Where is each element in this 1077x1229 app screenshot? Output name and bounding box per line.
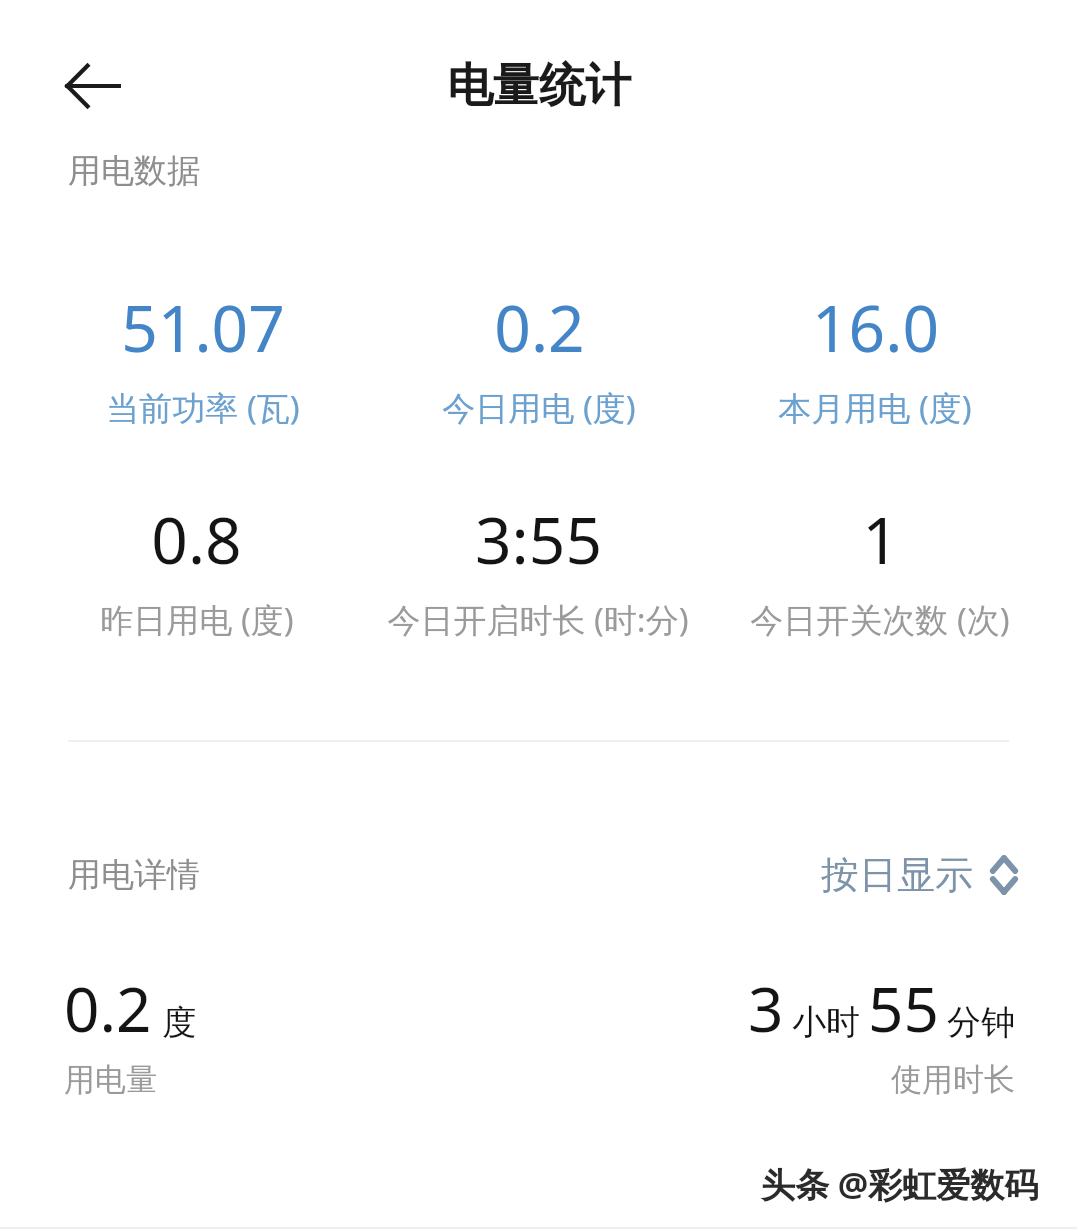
staticText: 16.0 (812, 284, 939, 371)
button[interactable]: 0.2 (371, 284, 707, 430)
staticText: 今日开关次数 (次) (750, 597, 1010, 642)
staticText: 3:55 (475, 496, 602, 583)
button[interactable]: 1 (709, 496, 1051, 642)
staticText: 当前功率 (瓦) (106, 385, 300, 430)
staticText: 0.8 (151, 496, 242, 583)
staticText: 用电数据 (68, 150, 200, 192)
staticText: 分钟 (947, 1001, 1015, 1044)
staticText: 3 (748, 966, 784, 1050)
button[interactable]: 按日显示 (821, 850, 1021, 900)
staticText: 本月用电 (度) (778, 385, 972, 430)
button[interactable]: 3:55 (367, 496, 709, 642)
staticText: 小时 (792, 1001, 860, 1044)
button[interactable]: Back (56, 50, 128, 122)
staticText: 55 (868, 966, 939, 1050)
button[interactable]: 51.07 (34, 284, 371, 430)
staticText: 昨日用电 (度) (100, 597, 294, 642)
staticText: 度 (162, 1001, 196, 1044)
other: Change period (987, 850, 1021, 900)
staticText: 按日显示 (821, 851, 973, 899)
button[interactable]: 0.2 (64, 966, 196, 1099)
staticText: 电量统计 (447, 57, 631, 115)
staticText: 使用时长 (891, 1060, 1015, 1099)
staticText: 用电量 (64, 1060, 157, 1099)
button[interactable]: 0.8 (26, 496, 367, 642)
staticText: 1 (862, 496, 899, 583)
staticText: 头条 @彩虹爱数码 (761, 1161, 1039, 1207)
staticText: 今日开启时长 (时:分) (387, 597, 689, 642)
button[interactable]: 16.0 (707, 284, 1043, 430)
staticText: 51.07 (121, 284, 285, 371)
staticText: 今日用电 (度) (442, 385, 636, 430)
button[interactable]: 用电详情 (68, 854, 200, 896)
staticText: 0.2 (64, 966, 152, 1050)
staticText: 0.2 (494, 284, 585, 371)
button[interactable]: 3 (748, 966, 1015, 1099)
